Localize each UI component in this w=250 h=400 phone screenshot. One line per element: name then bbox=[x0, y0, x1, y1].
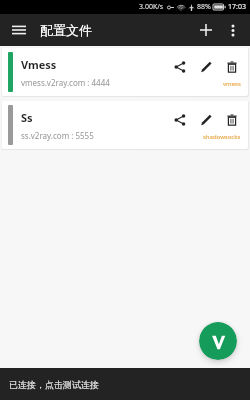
button[interactable]: Add profile bbox=[193, 17, 219, 43]
button[interactable]: 已连接，点击测试连接 bbox=[0, 368, 250, 400]
button[interactable]: More options bbox=[221, 18, 245, 42]
button[interactable]: Vmess bbox=[2, 48, 248, 96]
button[interactable]: Share bbox=[169, 109, 191, 131]
staticText: 已连接，点击测试连接 bbox=[9, 379, 99, 390]
staticText: vmess bbox=[223, 80, 241, 88]
button[interactable]: Edit bbox=[195, 56, 217, 78]
staticText: shadowsocks bbox=[203, 133, 241, 141]
button[interactable]: Delete bbox=[221, 109, 243, 131]
button[interactable]: Start connection bbox=[199, 322, 237, 360]
staticText: Vmess bbox=[21, 57, 57, 72]
staticText: vmess.v2ray.com : 4444 bbox=[21, 77, 110, 88]
staticText: 3.00K/s bbox=[139, 2, 164, 12]
staticText: 17:03 bbox=[228, 2, 246, 12]
button[interactable]: Edit bbox=[195, 109, 217, 131]
button[interactable]: Share bbox=[169, 56, 191, 78]
staticText: Ss bbox=[21, 110, 33, 125]
staticText: ss.v2ray.com : 5555 bbox=[21, 130, 94, 141]
button[interactable]: Ss bbox=[2, 101, 248, 149]
button[interactable]: Delete bbox=[221, 56, 243, 78]
button[interactable]: Open navigation menu bbox=[7, 18, 31, 42]
staticText: 88% bbox=[197, 2, 211, 12]
staticText: 配置文件 bbox=[40, 22, 92, 38]
